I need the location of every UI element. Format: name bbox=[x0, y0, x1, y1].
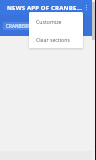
staticText: CRANBERRY bbox=[6, 23, 33, 29]
button[interactable]: More options bbox=[81, 2, 92, 13]
staticText: NEWS APP OF CRANBE... bbox=[7, 4, 83, 12]
button[interactable]: Clear sections bbox=[29, 30, 83, 48]
staticText: Clear sections bbox=[36, 36, 70, 43]
button[interactable]: Customize Sections bbox=[29, 12, 83, 30]
button[interactable]: CRANBERRY bbox=[3, 22, 36, 30]
staticText: Customize Sections bbox=[36, 18, 83, 25]
